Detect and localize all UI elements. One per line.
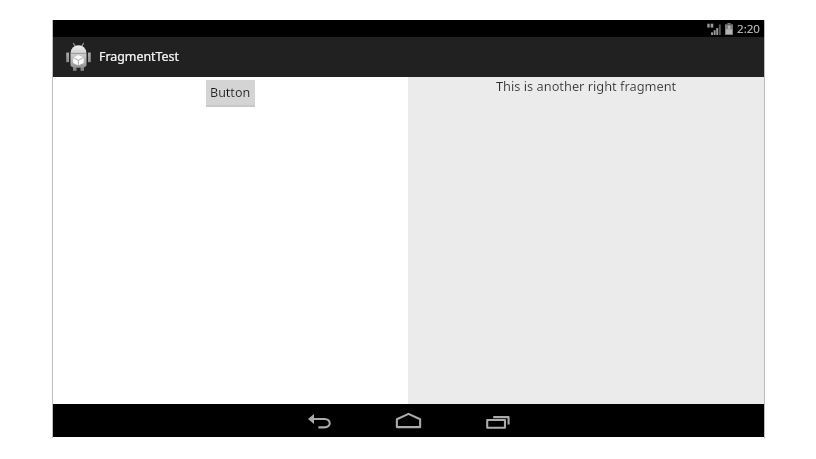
button[interactable]: FragmentTest bbox=[53, 37, 192, 77]
staticText: 2:20 bbox=[737, 21, 761, 37]
button[interactable]: Button bbox=[206, 80, 255, 107]
staticText: This is another right fragment bbox=[496, 77, 677, 94]
button[interactable]: Back bbox=[296, 404, 342, 437]
button[interactable]: Home bbox=[385, 404, 431, 437]
staticText: FragmentTest bbox=[99, 48, 179, 65]
button[interactable]: Recents bbox=[475, 404, 521, 437]
staticText: Button bbox=[210, 84, 251, 101]
